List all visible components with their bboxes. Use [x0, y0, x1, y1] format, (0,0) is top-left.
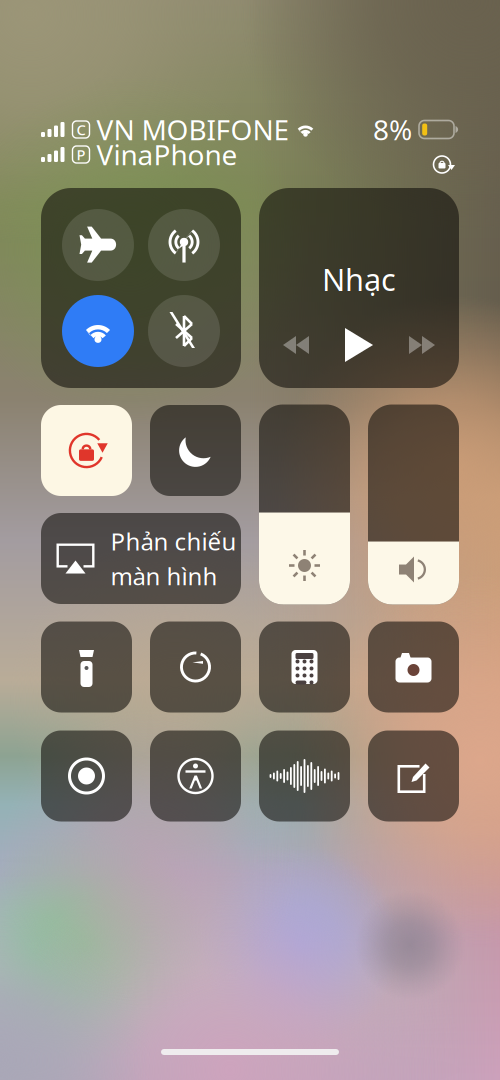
- button[interactable]: Calculator: [259, 621, 350, 712]
- button[interactable]: Previous: [271, 324, 321, 366]
- button[interactable]: Airplane Mode: [62, 209, 134, 281]
- button[interactable]: Accessibility Shortcuts: [150, 730, 241, 821]
- button[interactable]: Volume: [368, 404, 459, 604]
- staticText: Phản chiếu: [110, 525, 236, 557]
- button[interactable]: Screen Recording: [41, 730, 132, 821]
- staticText: P: [76, 145, 85, 164]
- button[interactable]: Bluetooth: [148, 295, 220, 367]
- staticText: màn hình: [110, 560, 217, 592]
- staticText: VinaPhone: [96, 136, 237, 173]
- button[interactable]: Rotation Lock: [41, 405, 132, 496]
- staticText: VN MOBIFONE: [96, 111, 289, 148]
- button[interactable]: Next: [397, 324, 447, 366]
- staticText: 8%: [373, 111, 412, 148]
- button[interactable]: Timer: [150, 621, 241, 712]
- button[interactable]: Play: [334, 324, 384, 366]
- button[interactable]: Cellular Data: [148, 209, 220, 281]
- button[interactable]: Sound Recognition: [259, 730, 350, 821]
- button[interactable]: Do Not Disturb: [150, 405, 241, 496]
- button[interactable]: Camera: [368, 621, 459, 712]
- staticText: C: [76, 120, 85, 139]
- staticText: Nhạc: [322, 259, 396, 299]
- button[interactable]: Brightness: [259, 404, 350, 604]
- button[interactable]: Flashlight: [41, 621, 132, 712]
- button[interactable]: Notes: [368, 730, 459, 821]
- button[interactable]: Screen Mirroring: [41, 513, 241, 604]
- button[interactable]: Wi-Fi: [62, 295, 134, 367]
